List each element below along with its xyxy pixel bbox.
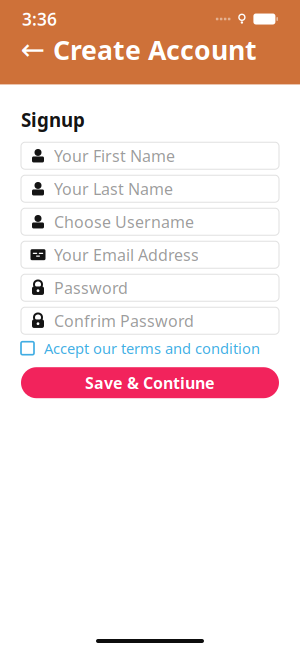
staticText: Create Account — [53, 32, 257, 67]
staticText: Accept our terms and condition — [44, 338, 260, 358]
staticText: Save & Contiune — [85, 372, 215, 393]
staticText: Your Last Name — [54, 178, 173, 199]
button[interactable]: Save & Contiune — [21, 367, 279, 398]
staticText: Your Email Address — [54, 244, 199, 265]
staticText: 3:36 — [22, 7, 57, 30]
staticText: Password — [54, 277, 128, 298]
button[interactable]: Accept our terms and condition — [21, 334, 279, 362]
staticText: ← — [20, 33, 45, 66]
staticText: Your First Name — [54, 145, 175, 166]
staticText: Confrim Password — [54, 310, 194, 331]
staticText: Signup — [21, 107, 85, 132]
button[interactable]: Back — [21, 37, 45, 63]
staticText: Choose Username — [54, 211, 194, 232]
